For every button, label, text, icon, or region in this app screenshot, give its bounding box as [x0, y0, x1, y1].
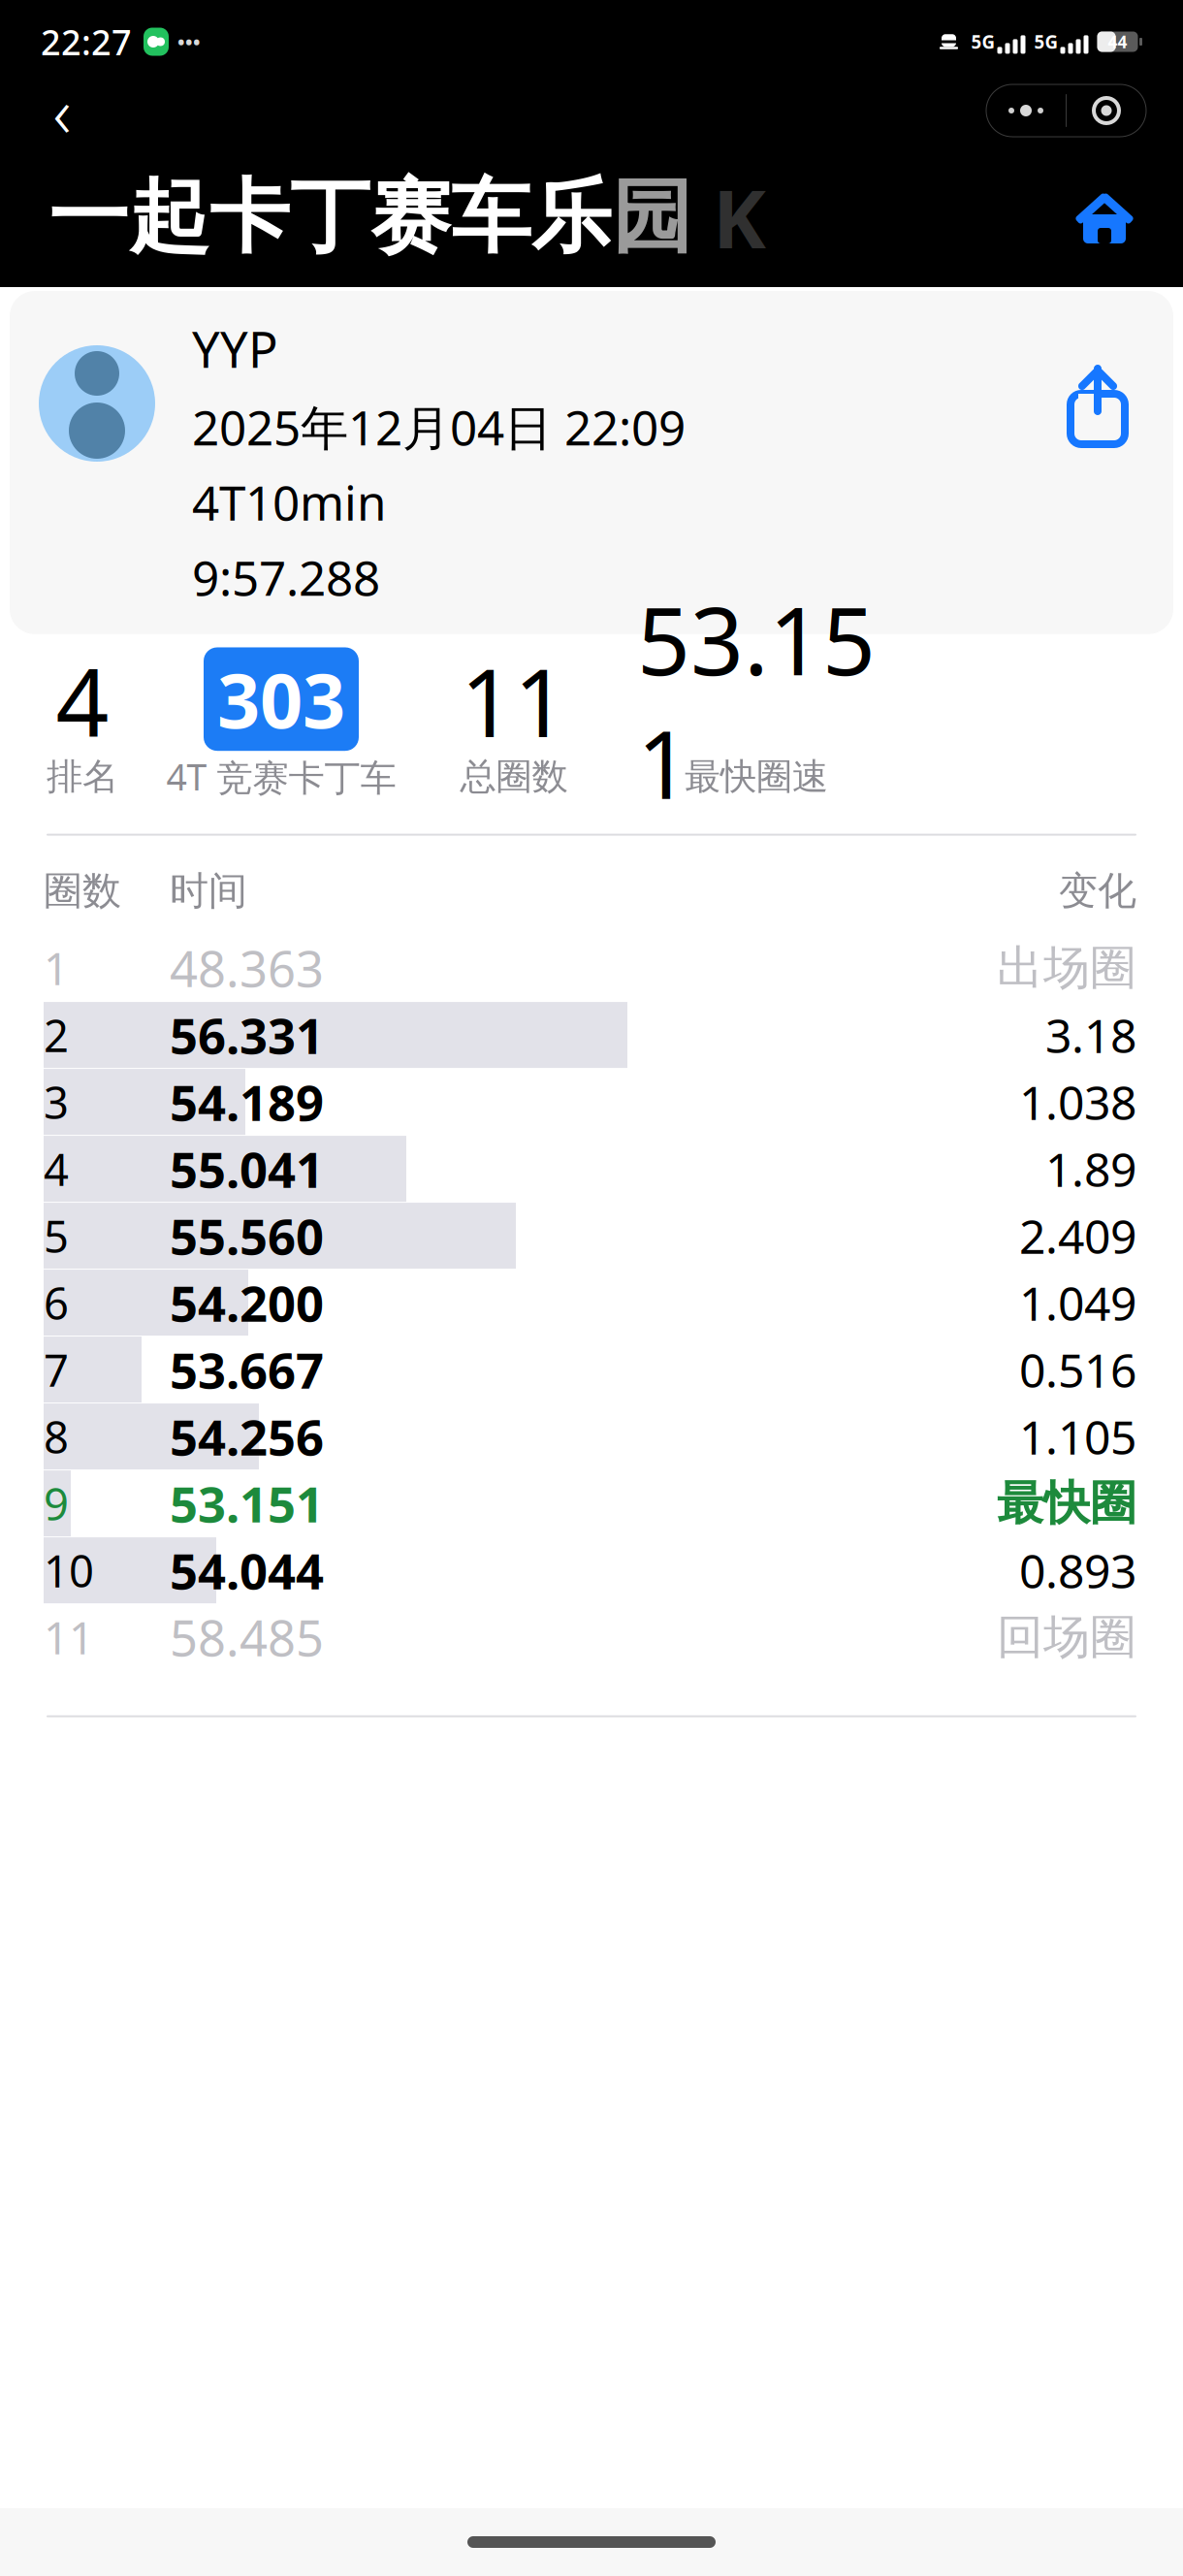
- staticText: 9:57.288: [192, 545, 380, 609]
- staticText: 53.151: [170, 1471, 324, 1536]
- staticText: 54.256: [170, 1404, 324, 1469]
- staticText: 最快圈速: [685, 754, 828, 799]
- button[interactable]: 1: [0, 935, 1183, 1001]
- button[interactable]: Home: [1076, 191, 1133, 243]
- staticText: 4: [56, 639, 109, 763]
- staticText: 出场圈: [997, 939, 1136, 997]
- staticText: 8: [44, 1407, 69, 1466]
- staticText: 11: [461, 639, 567, 763]
- staticText: 303: [217, 649, 345, 749]
- staticText: 54.189: [170, 1069, 324, 1134]
- staticText: 9: [44, 1474, 69, 1533]
- button[interactable]: Share: [1067, 316, 1133, 444]
- staticText: 3.18: [1045, 1004, 1136, 1066]
- staticText: 2.409: [1019, 1205, 1136, 1267]
- button[interactable]: 7: [0, 1336, 1183, 1403]
- staticText: 2: [44, 1006, 69, 1064]
- staticText: 5G: [1034, 30, 1058, 54]
- button[interactable]: 6: [0, 1269, 1183, 1336]
- staticText: 48.363: [170, 935, 324, 1001]
- button[interactable]: 3: [0, 1068, 1183, 1135]
- staticText: 1.049: [1019, 1272, 1136, 1333]
- staticText: 变化: [1059, 867, 1136, 915]
- staticText: 54.200: [170, 1270, 324, 1335]
- button[interactable]: 5: [0, 1202, 1183, 1269]
- staticText: 5G: [971, 30, 995, 54]
- staticText: 54.044: [170, 1538, 324, 1603]
- staticText: 圈数: [44, 867, 121, 915]
- button[interactable]: 10: [0, 1537, 1183, 1604]
- staticText: 4T10min: [192, 470, 386, 534]
- staticText: 7: [44, 1340, 69, 1399]
- staticText: 6: [44, 1273, 69, 1332]
- staticText: 时间: [170, 867, 247, 915]
- staticText: 1.89: [1045, 1138, 1136, 1200]
- button[interactable]: 8: [0, 1403, 1183, 1470]
- staticText: 排名: [47, 754, 118, 799]
- staticText: 55.041: [170, 1136, 324, 1201]
- staticText: •••: [177, 29, 201, 55]
- staticText: 58.485: [170, 1605, 324, 1670]
- staticText: 一起卡丁赛车乐: [48, 168, 612, 266]
- staticText: 10: [44, 1541, 94, 1600]
- button[interactable]: 2: [0, 1001, 1183, 1068]
- staticText: 1.105: [1019, 1406, 1136, 1467]
- staticText: 最快圈: [997, 1475, 1136, 1532]
- staticText: 0.893: [1019, 1539, 1136, 1601]
- staticText: YYP: [192, 316, 278, 381]
- staticText: 56.331: [170, 1002, 324, 1068]
- staticText: 0.516: [1019, 1339, 1136, 1400]
- staticText: 3: [44, 1073, 69, 1131]
- button[interactable]: Back: [23, 77, 101, 145]
- button[interactable]: More: [986, 84, 1066, 137]
- staticText: 2025年12月04日 22:09: [192, 395, 686, 459]
- staticText: 回场圈: [997, 1609, 1136, 1666]
- button[interactable]: Close: [1067, 84, 1146, 137]
- staticText: 22:27: [41, 19, 132, 65]
- staticText: 53.667: [170, 1337, 324, 1402]
- staticText: 11: [44, 1608, 94, 1666]
- staticText: 1: [44, 939, 69, 997]
- staticText: 总圈数: [460, 754, 568, 799]
- staticText: 园: [612, 168, 692, 266]
- staticText: 4: [44, 1140, 69, 1198]
- staticText: 55.560: [170, 1203, 324, 1268]
- staticText: 1.038: [1019, 1071, 1136, 1133]
- staticText: 4T 竞赛卡丁车: [166, 752, 396, 801]
- staticText: 53.151: [637, 577, 876, 825]
- staticText: K: [692, 164, 766, 270]
- staticText: ‹: [53, 64, 71, 157]
- staticText: 5: [44, 1207, 69, 1265]
- button[interactable]: 4: [0, 1135, 1183, 1202]
- button[interactable]: 11: [0, 1604, 1183, 1671]
- staticText: 44: [1108, 31, 1127, 53]
- button[interactable]: 9: [0, 1470, 1183, 1537]
